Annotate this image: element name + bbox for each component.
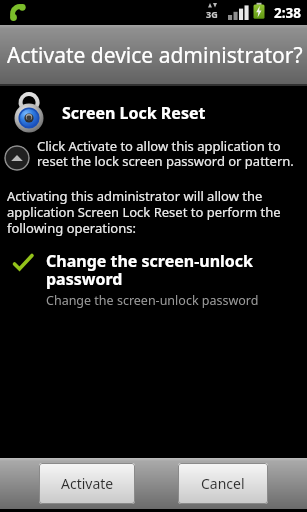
- button[interactable]: Cancel: [178, 463, 268, 504]
- staticText: 3G: [206, 8, 218, 20]
- staticText: Click Activate to allow this application…: [37, 137, 294, 170]
- staticText: Screen Lock Reset: [62, 102, 206, 124]
- staticText: Change the screen-unlock password: [46, 250, 254, 290]
- staticText: Cancel: [201, 474, 245, 493]
- staticText: 2:38: [274, 4, 301, 22]
- button[interactable]: Activate: [39, 463, 135, 504]
- staticText: Activating this administrator will allow…: [7, 187, 281, 236]
- button[interactable]: [4, 145, 30, 171]
- staticText: Activate device administrator?: [7, 41, 303, 70]
- staticText: Activate: [61, 474, 114, 493]
- staticText: Change the screen-unlock password: [46, 292, 259, 309]
